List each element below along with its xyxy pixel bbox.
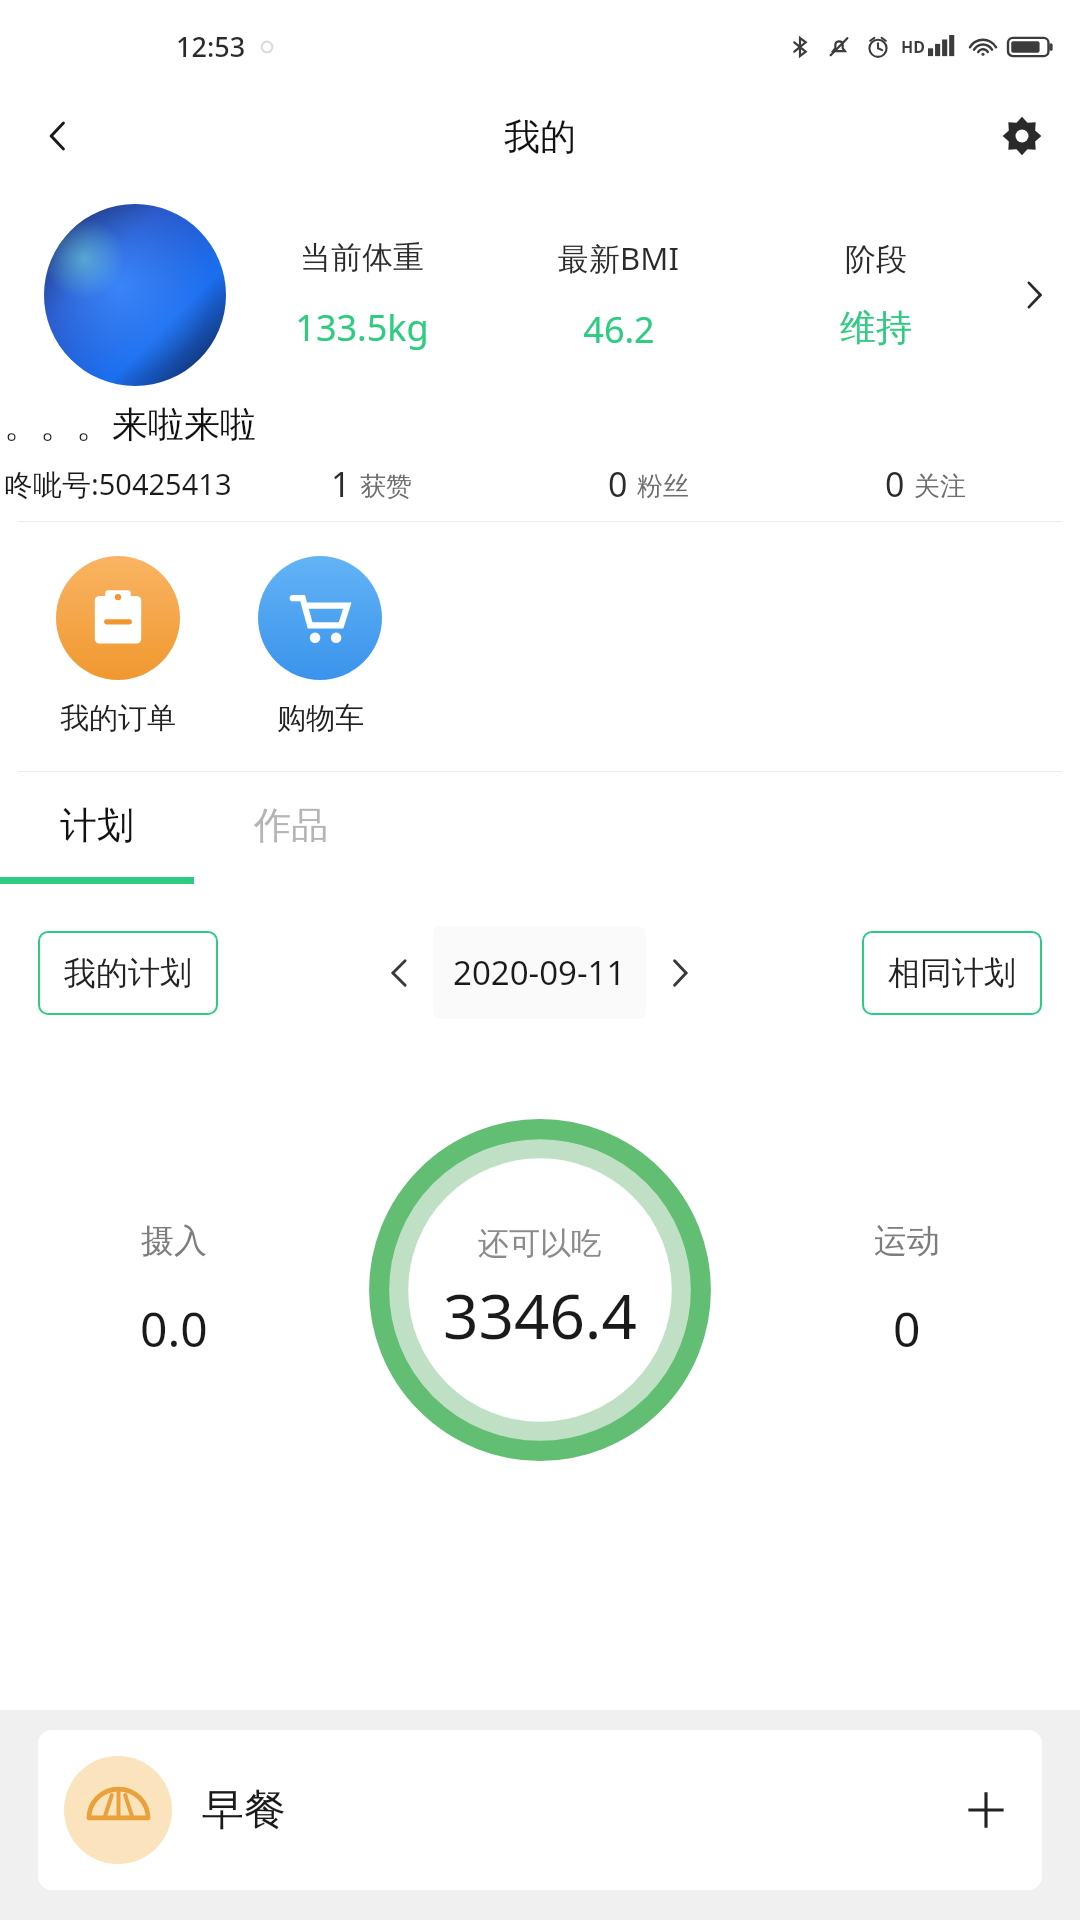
staticText: 计划 bbox=[60, 802, 134, 849]
button[interactable]: 购物车 bbox=[258, 556, 382, 737]
button[interactable]: 1 bbox=[232, 461, 510, 507]
staticText: 我的计划 bbox=[64, 953, 192, 993]
staticText: 当前体重 bbox=[300, 238, 424, 277]
button[interactable]: More bbox=[1004, 265, 1064, 325]
button[interactable]: Settings bbox=[990, 104, 1054, 168]
button[interactable]: 计划 bbox=[0, 802, 194, 849]
staticText: 最新BMI bbox=[558, 237, 679, 279]
button[interactable]: 阶段 bbox=[747, 240, 1004, 350]
staticText: 粉丝 bbox=[637, 470, 689, 503]
staticText: 。。。来啦来啦 bbox=[4, 402, 256, 447]
staticText: 购物车 bbox=[277, 700, 364, 737]
other: Add breakfast bbox=[956, 1780, 1016, 1840]
staticText: 摄入 bbox=[141, 1220, 207, 1262]
button[interactable]: 我的订单 bbox=[56, 556, 180, 737]
staticText: 0 bbox=[885, 461, 905, 507]
button[interactable]: Next day bbox=[650, 943, 710, 1003]
staticText: 46.2 bbox=[583, 305, 655, 354]
button[interactable] bbox=[44, 204, 226, 386]
staticText: 维持 bbox=[840, 305, 912, 350]
button[interactable]: 0 bbox=[510, 461, 787, 507]
staticText: 获赞 bbox=[360, 470, 412, 503]
staticText: 还可以吃 bbox=[478, 1224, 602, 1263]
staticText: 0 bbox=[608, 461, 628, 507]
button[interactable]: 最新BMI bbox=[490, 237, 747, 354]
staticText: 关注 bbox=[914, 470, 966, 503]
button[interactable]: 当前体重 bbox=[234, 238, 490, 352]
button[interactable]: 我的计划 bbox=[38, 931, 218, 1015]
button[interactable]: 2020-09-11 bbox=[433, 926, 646, 1019]
staticText: HD bbox=[901, 36, 925, 58]
button[interactable]: 作品 bbox=[194, 802, 388, 849]
staticText: 运动 bbox=[874, 1220, 940, 1262]
button[interactable]: 相同计划 bbox=[862, 931, 1042, 1015]
staticText: 相同计划 bbox=[888, 953, 1016, 993]
staticText: 133.5kg bbox=[295, 303, 429, 352]
staticText: 0.0 bbox=[140, 1296, 208, 1361]
staticText: 我的 bbox=[504, 114, 576, 159]
button[interactable]: 早餐 bbox=[38, 1730, 1042, 1890]
staticText: 2020-09-11 bbox=[453, 950, 626, 995]
staticText: 0 bbox=[893, 1296, 921, 1361]
button[interactable]: 摄入 bbox=[0, 1220, 347, 1361]
staticText: 12:53 bbox=[176, 28, 246, 65]
staticText: 3346.4 bbox=[443, 1273, 637, 1357]
staticText: 作品 bbox=[254, 802, 328, 849]
button[interactable]: Back bbox=[22, 100, 94, 172]
button[interactable]: 0 bbox=[787, 461, 1064, 507]
staticText: 咚呲号:50425413 bbox=[4, 464, 232, 504]
staticText: 阶段 bbox=[845, 240, 907, 279]
staticText: 1 bbox=[331, 461, 351, 507]
staticText: 我的订单 bbox=[60, 700, 176, 737]
button[interactable]: 运动 bbox=[733, 1220, 1080, 1361]
button[interactable]: Previous day bbox=[369, 943, 429, 1003]
staticText: 早餐 bbox=[202, 1784, 286, 1837]
